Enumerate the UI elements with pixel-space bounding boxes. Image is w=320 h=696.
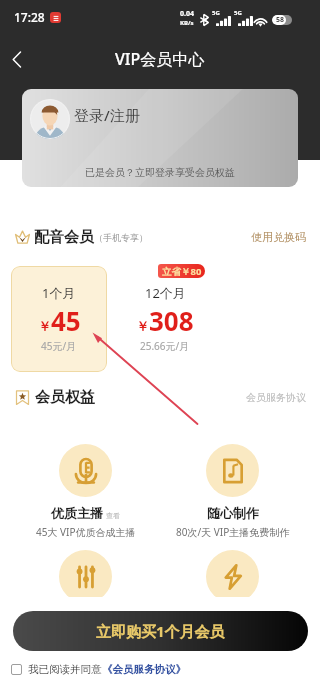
staticText: KB/s — [180, 19, 194, 27]
staticText: 配音会员 — [34, 228, 94, 247]
staticText: ￥ — [136, 318, 149, 334]
button[interactable]: 使用兑换码 — [251, 230, 306, 244]
button[interactable]: 《会员服务协议》 — [102, 663, 186, 676]
staticText: 登录/注册 — [74, 105, 140, 125]
staticText: 立省￥80 — [162, 265, 202, 278]
staticText: 会员权益 — [35, 388, 95, 407]
button[interactable] — [19, 550, 152, 603]
staticText: ￥ — [38, 318, 51, 334]
staticText: 我已阅读并同意 — [28, 663, 102, 676]
staticText: 5G — [234, 9, 242, 17]
button[interactable]: 会员服务协议 — [246, 391, 306, 404]
staticText: 12个月 — [145, 284, 186, 302]
staticText: 5G — [212, 9, 220, 17]
staticText: （手机专享） — [94, 232, 148, 243]
staticText: 会员服务协议 — [246, 391, 306, 404]
button[interactable]: 12个月 — [117, 266, 213, 372]
staticText: 优质主播 — [51, 505, 103, 521]
staticText: 45元/月 — [41, 339, 77, 353]
staticText: 80次/天 VIP主播免费制作 — [176, 525, 290, 539]
button[interactable]: Agree to terms checkbox — [11, 664, 22, 675]
staticText: 308 — [149, 303, 194, 338]
staticText: 已是会员？立即登录享受会员权益 — [85, 166, 235, 179]
button[interactable]: 1个月 — [11, 266, 107, 372]
staticText: 45大 VIP优质合成主播 — [36, 525, 136, 539]
button[interactable]: 登录/注册 — [22, 89, 298, 187]
staticText: 25.66元/月 — [140, 339, 190, 353]
staticText: 58 — [276, 15, 285, 25]
staticText: 1个月 — [42, 284, 76, 302]
staticText: 45 — [51, 303, 81, 338]
button[interactable]: 立即购买1个月会员 — [13, 611, 308, 651]
staticText: 查看 — [106, 511, 120, 520]
staticText: VIP会员中心 — [115, 48, 205, 70]
button[interactable]: 随心制作 — [166, 444, 299, 539]
staticText: 0.04 — [180, 9, 194, 19]
staticText: 立即购买1个月会员 — [96, 621, 225, 641]
button[interactable]: 优质主播 — [19, 444, 152, 539]
staticText: 《会员服务协议》 — [102, 663, 186, 676]
staticText: 随心制作 — [207, 505, 259, 521]
button[interactable]: Back — [0, 42, 34, 76]
staticText: 使用兑换码 — [251, 230, 306, 244]
button[interactable] — [166, 550, 299, 603]
staticText: 17:28 — [14, 9, 45, 25]
